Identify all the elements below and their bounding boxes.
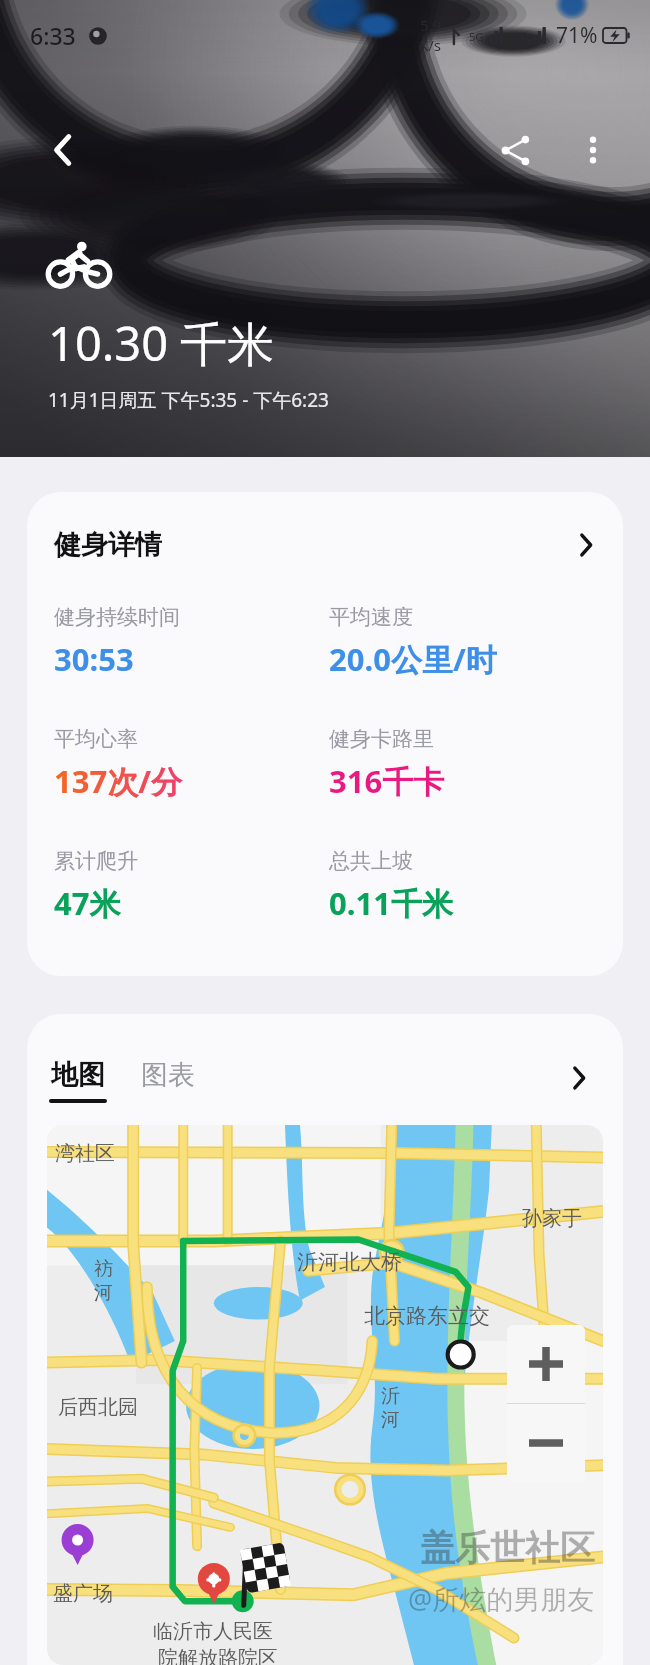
staticText: 健身详情 <box>54 528 162 562</box>
staticText: 盖乐世社区 <box>420 1526 595 1570</box>
button[interactable]: Share <box>480 115 550 185</box>
button[interactable]: More options <box>558 115 628 185</box>
staticText: 图表 <box>141 1058 195 1092</box>
staticText: 累计爬升 <box>54 848 138 874</box>
staticText: 临沂市人民医 <box>153 1619 273 1644</box>
staticText: 47米 <box>54 882 121 924</box>
staticText: 后西北园 <box>58 1395 138 1420</box>
staticText: 湾社区 <box>55 1141 115 1166</box>
staticText: 5G <box>512 29 527 44</box>
staticText: 健身持续时间 <box>54 604 180 630</box>
staticText: 河 <box>381 1408 400 1432</box>
button[interactable]: Open map <box>559 1058 599 1098</box>
button[interactable]: Zoom in <box>507 1325 585 1403</box>
staticText: 30:53 <box>54 638 134 680</box>
staticText: 沂 <box>381 1384 400 1408</box>
staticText: 总共上坡 <box>329 848 413 874</box>
staticText: 健身卡路里 <box>329 726 434 752</box>
staticText: 北京路东立交 <box>364 1303 490 1329</box>
staticText: 盛广场 <box>53 1581 113 1606</box>
staticText: 6:33 <box>30 20 76 51</box>
staticText: @所炫的男朋友 <box>408 1580 595 1617</box>
staticText: 平均心率 <box>54 726 138 752</box>
button[interactable]: 地图 <box>47 1058 109 1103</box>
staticText: 地图 <box>51 1058 105 1092</box>
staticText: 316千卡 <box>329 760 445 802</box>
staticText: 院解放路院区 <box>158 1646 278 1665</box>
staticText: K/s <box>419 35 442 55</box>
staticText: 20.0公里/时 <box>329 638 497 680</box>
staticText: 10.30 千米 <box>48 311 275 375</box>
staticText: 137次/分 <box>54 760 183 802</box>
staticText: 71% <box>556 21 598 50</box>
button[interactable]: Back <box>28 115 98 185</box>
staticText: 5G <box>469 29 484 44</box>
staticText: 孙家于 <box>522 1206 582 1231</box>
staticText: 沂河北大桥 <box>297 1249 402 1275</box>
staticText: 河 <box>94 1281 113 1305</box>
staticText: 祊 <box>94 1257 113 1281</box>
staticText: 0.11千米 <box>329 882 453 924</box>
staticText: 11月1日周五 下午5:35 - 下午6:23 <box>48 387 329 413</box>
staticText: 5.9 <box>420 15 442 35</box>
button[interactable]: 健身详情 <box>27 492 623 582</box>
button[interactable]: 图表 <box>139 1058 197 1092</box>
button[interactable]: Zoom out <box>507 1404 585 1482</box>
staticText: 平均速度 <box>329 604 413 630</box>
